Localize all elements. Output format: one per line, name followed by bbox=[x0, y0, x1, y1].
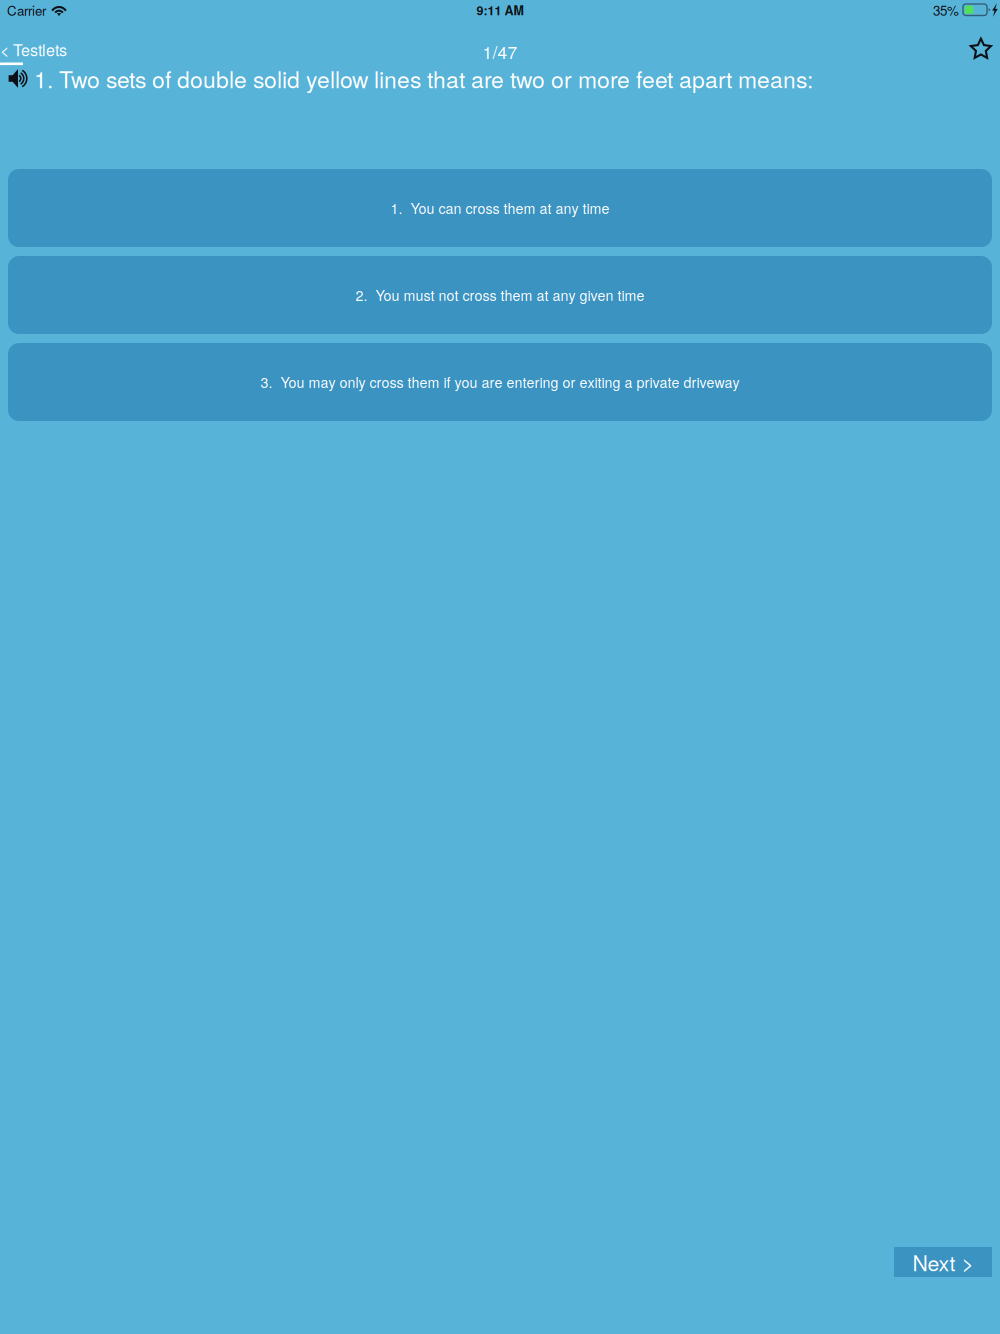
button[interactable]: 3. You may only cross them if you are en… bbox=[8, 343, 992, 421]
staticText: 9:11 AM bbox=[476, 1, 523, 19]
button[interactable]: 1. You can cross them at any time bbox=[8, 169, 992, 247]
staticText: 1. You can cross them at any time bbox=[390, 198, 609, 218]
button[interactable]: Read question aloud bbox=[8, 68, 28, 88]
staticText: 3. You may only cross them if you are en… bbox=[260, 372, 739, 392]
staticText: < Testlets bbox=[0, 38, 67, 61]
button[interactable]: Next > bbox=[894, 1247, 992, 1277]
button[interactable]: 2. You must not cross them at any given … bbox=[8, 256, 992, 334]
staticText: 35% bbox=[933, 0, 959, 20]
button[interactable]: < Testlets bbox=[0, 38, 84, 68]
staticText: Carrier bbox=[7, 0, 46, 20]
staticText: 1/47 bbox=[482, 39, 517, 64]
staticText: 1. Two sets of double solid yellow lines… bbox=[34, 62, 813, 95]
staticText: Next > bbox=[912, 1247, 973, 1277]
staticText: 2. You must not cross them at any given … bbox=[355, 285, 644, 305]
button[interactable]: Favorite bbox=[969, 37, 993, 61]
